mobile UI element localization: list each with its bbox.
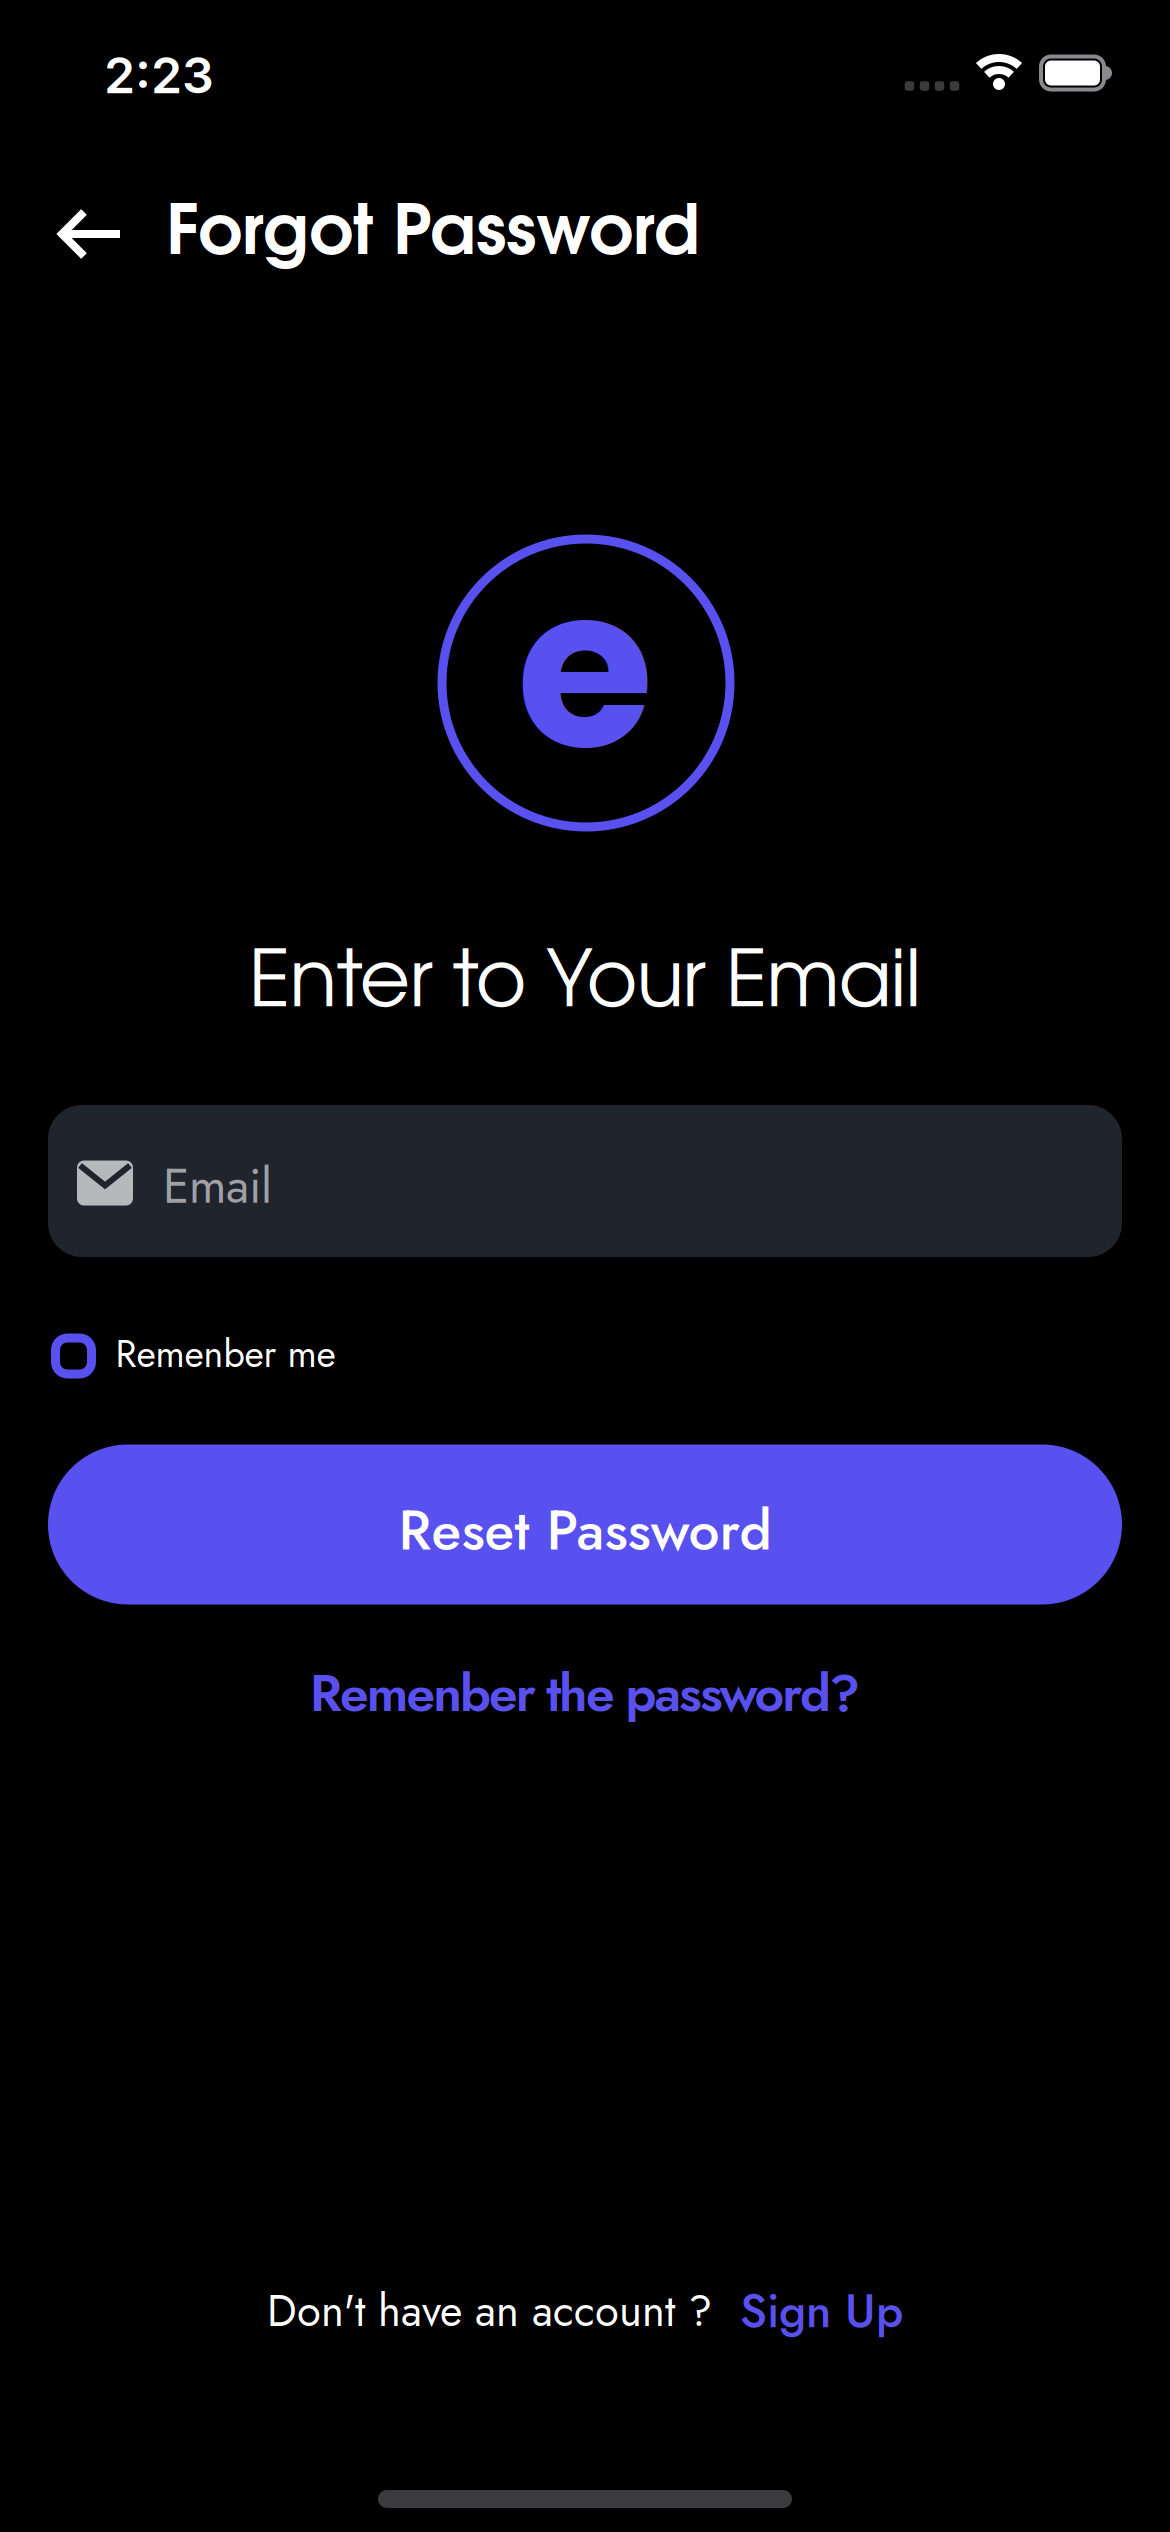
staticText: e bbox=[516, 512, 653, 824]
staticText: Reset Password bbox=[398, 1491, 771, 1570]
staticText: Email bbox=[163, 1151, 272, 1221]
staticText: Enter to Your Email bbox=[248, 949, 921, 1021]
staticText: 2:23 bbox=[104, 45, 214, 105]
staticText: Sign Up bbox=[740, 2277, 903, 2345]
staticText: Remenber the password? bbox=[310, 1656, 860, 1730]
staticText: Remenber me bbox=[115, 1327, 335, 1381]
button[interactable]: Remember me bbox=[0, 1329, 1170, 1383]
button[interactable]: Sign Up bbox=[740, 2277, 903, 2345]
staticText: Forgot Password bbox=[166, 203, 700, 267]
button[interactable]: Reset Password bbox=[48, 1444, 1122, 1604]
button[interactable]: Remenber the password? bbox=[310, 1656, 860, 1730]
button[interactable]: Back bbox=[46, 199, 136, 269]
button[interactable]: Email bbox=[48, 1105, 1122, 1257]
staticText: Don't have an account ? bbox=[267, 2280, 712, 2342]
